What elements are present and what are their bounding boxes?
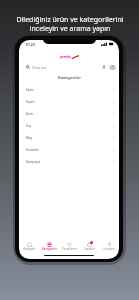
button[interactable]: Kişisel (19, 96, 119, 108)
button[interactable]: Kuş (19, 120, 119, 132)
button[interactable]: Favorilerim (59, 239, 79, 252)
button[interactable]: Kozmetik (19, 144, 119, 156)
staticText: Kategoriler (58, 75, 81, 81)
staticText: Sepetim (84, 247, 95, 251)
button[interactable]: Blog (19, 132, 119, 144)
button[interactable]: Barkod okut (108, 63, 116, 71)
staticText: Kategoriler (42, 247, 57, 251)
staticText: pembe (60, 54, 71, 59)
button[interactable]: Anne (19, 108, 119, 120)
staticText: Ürün ara (32, 65, 47, 70)
staticText: Dilediğiniz ürün ve kategorilerini incel… (16, 15, 124, 33)
staticText: Kadın (26, 88, 34, 92)
staticText: Blog (26, 136, 33, 140)
staticText: Kozmetik (26, 148, 39, 152)
staticText: Favorilerim (62, 247, 77, 251)
button[interactable]: Hesabım (99, 239, 119, 252)
button[interactable]: Kadın (19, 84, 119, 96)
staticText: Anne (26, 112, 34, 116)
staticText: 01:20 (26, 42, 35, 47)
button[interactable]: Kampanya (19, 156, 119, 168)
button[interactable]: Anasayfa (19, 239, 39, 252)
staticText: Kişisel (26, 100, 35, 104)
staticText: Hesabım (103, 247, 115, 251)
staticText: Anasayfa (23, 247, 35, 251)
staticText: Kuş (26, 124, 31, 128)
button[interactable]: Ürün ara (26, 62, 100, 72)
staticText: Kampanya (26, 160, 41, 164)
button[interactable]: Kategoriler (39, 239, 59, 252)
button[interactable]: Sesli arama (100, 63, 108, 71)
button[interactable]: Sepetim (79, 239, 99, 252)
